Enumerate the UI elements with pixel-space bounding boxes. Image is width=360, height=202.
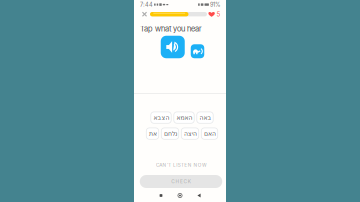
staticText: נלחם xyxy=(163,130,176,137)
button[interactable]: האם xyxy=(201,128,218,139)
button[interactable]: הצבא xyxy=(151,112,171,123)
staticText: היצה xyxy=(183,130,196,137)
staticText: 5 xyxy=(216,10,220,18)
staticText: באה xyxy=(199,114,211,121)
button[interactable]: CHECK xyxy=(140,175,222,188)
button[interactable]: CAN'T LISTEN NOW xyxy=(135,160,227,169)
button[interactable]: את xyxy=(146,128,159,139)
button[interactable]: באה xyxy=(197,112,213,123)
staticText: CAN'T LISTEN NOW xyxy=(156,162,207,168)
staticText: האם xyxy=(203,130,215,137)
button[interactable]: Recent apps xyxy=(151,188,170,202)
button[interactable]: Back xyxy=(189,188,208,202)
button[interactable]: Play audio slowly xyxy=(191,44,204,58)
staticText: את xyxy=(148,130,156,137)
button[interactable]: נלחם xyxy=(161,128,179,139)
button[interactable]: האמא xyxy=(174,112,194,123)
button[interactable]: Hearts: 5 xyxy=(208,8,220,20)
staticText: האמא xyxy=(176,114,192,121)
staticText: Tap what you hear xyxy=(140,24,202,33)
button[interactable]: היצה xyxy=(181,128,199,139)
button[interactable]: Close lesson xyxy=(139,8,150,20)
staticText: 7:44 xyxy=(140,1,153,8)
staticText: 91% xyxy=(210,1,220,8)
button[interactable]: Home xyxy=(170,188,189,202)
button[interactable]: Play audio xyxy=(161,36,185,58)
staticText: CHECK xyxy=(171,179,191,184)
staticText: הצבא xyxy=(153,114,169,121)
